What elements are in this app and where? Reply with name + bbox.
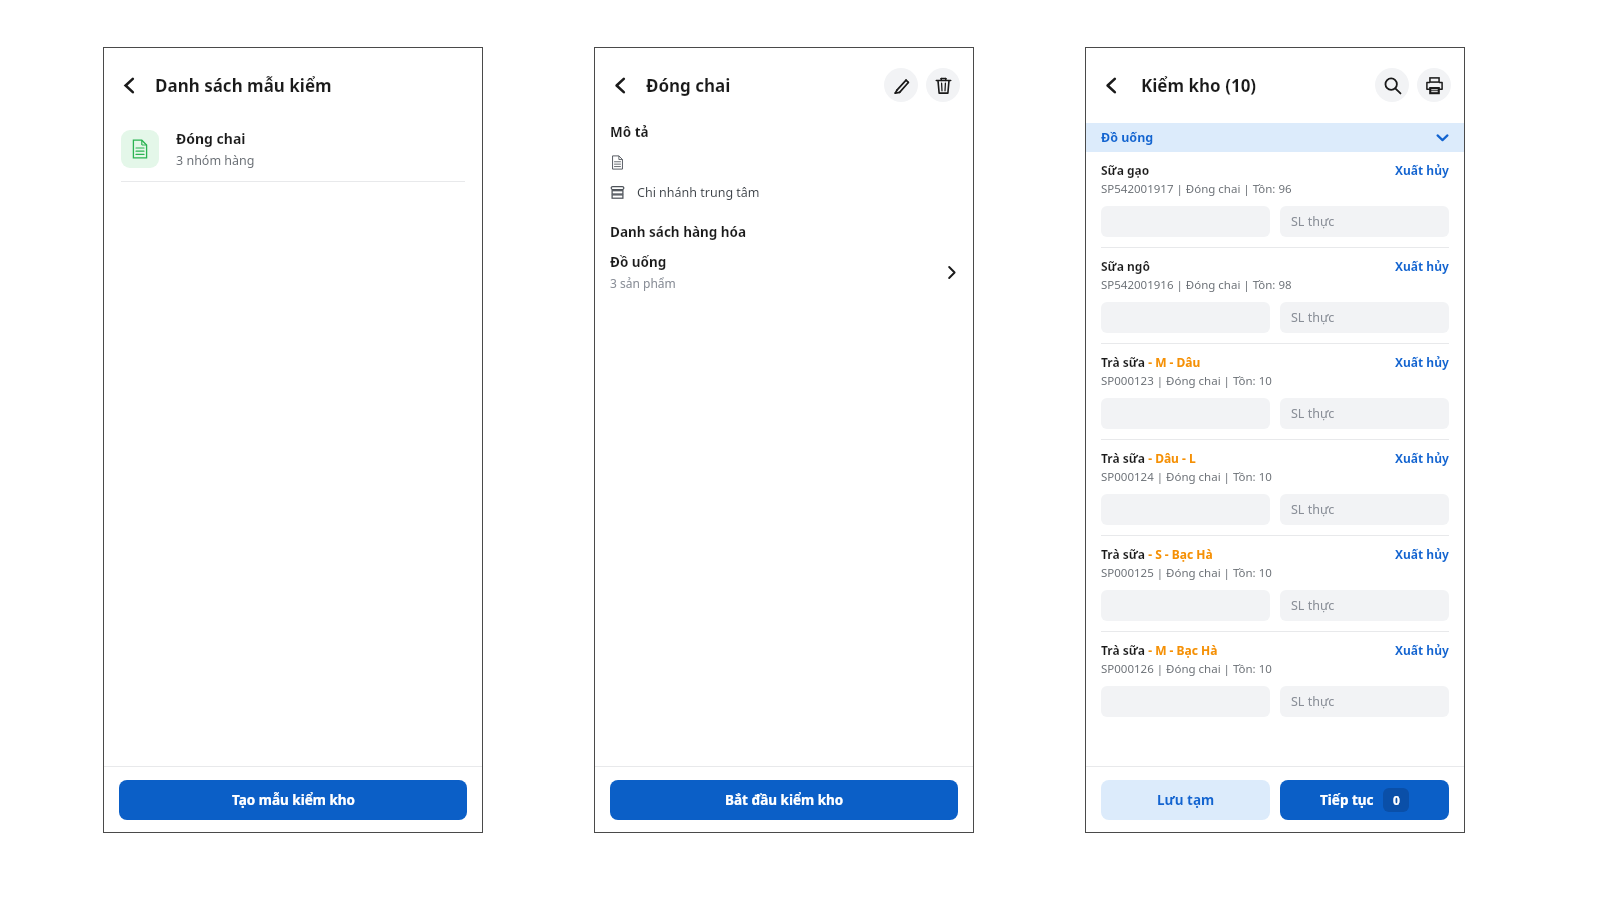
staticText: Đồ uống bbox=[1101, 129, 1154, 146]
button[interactable]: In bbox=[1417, 68, 1451, 102]
staticText: 3 sản phẩm bbox=[610, 275, 676, 291]
button[interactable]: Quay lại bbox=[1099, 73, 1123, 97]
staticText: Đóng chai bbox=[176, 129, 246, 148]
staticText: SP542001917 | Đóng chai | Tồn: 96 bbox=[1101, 181, 1292, 197]
staticText: 0 bbox=[1393, 792, 1400, 808]
button[interactable]: SL thực bbox=[1280, 302, 1449, 333]
staticText: SL thực bbox=[1291, 693, 1335, 710]
staticText: Bắt đầu kiểm kho bbox=[725, 791, 844, 809]
button[interactable]: Đóng chai bbox=[103, 123, 483, 181]
button[interactable]: Đồ uống bbox=[594, 241, 974, 301]
button[interactable]: Tìm kiếm bbox=[1375, 68, 1409, 102]
button[interactable]: Trà sữa - Dâu - L bbox=[1085, 440, 1465, 535]
button[interactable]: Lưu tạm bbox=[1101, 780, 1270, 820]
staticText: SL thực bbox=[1291, 597, 1335, 614]
button[interactable]: Bắt đầu kiểm kho bbox=[610, 780, 958, 820]
button[interactable]: SL thực bbox=[1280, 686, 1449, 717]
staticText: Lưu tạm bbox=[1157, 791, 1215, 809]
staticText: Danh sách mẫu kiểm bbox=[155, 74, 332, 97]
staticText: SL thực bbox=[1291, 405, 1335, 422]
staticText: SP000124 | Đóng chai | Tồn: 10 bbox=[1101, 469, 1272, 485]
staticText: 3 nhóm hàng bbox=[176, 152, 255, 169]
button[interactable]: SL thực bbox=[1280, 206, 1449, 237]
staticText: Tiếp tục bbox=[1320, 791, 1374, 809]
button[interactable]: Xuất hủy bbox=[1395, 642, 1449, 658]
button[interactable]: Tạo mẫu kiểm kho bbox=[119, 780, 467, 820]
staticText: Trà sữa - M - Dâu bbox=[1101, 354, 1201, 370]
button[interactable]: Trà sữa - S - Bạc Hà bbox=[1085, 536, 1465, 631]
button[interactable]: Trà sữa - M - Dâu bbox=[1085, 344, 1465, 439]
button[interactable]: SL thực bbox=[1280, 398, 1449, 429]
button[interactable]: Tiếp tục bbox=[1280, 780, 1449, 820]
staticText: Sữa gạo bbox=[1101, 162, 1150, 178]
staticText: SP000125 | Đóng chai | Tồn: 10 bbox=[1101, 565, 1272, 581]
button[interactable]: Xuất hủy bbox=[1395, 258, 1449, 274]
staticText: Tạo mẫu kiểm kho bbox=[232, 791, 355, 809]
button[interactable]: Sữa gạo bbox=[1085, 152, 1465, 247]
button[interactable]: Quay lại bbox=[608, 73, 632, 97]
button[interactable]: Xóa bbox=[926, 68, 960, 102]
staticText: Chi nhánh trung tâm bbox=[637, 184, 760, 201]
button[interactable]: Đồ uống bbox=[1085, 123, 1465, 152]
button[interactable]: Quay lại bbox=[117, 73, 141, 97]
staticText: Trà sữa - Dâu - L bbox=[1101, 450, 1196, 466]
staticText: Mô tả bbox=[610, 123, 649, 141]
staticText: SP000126 | Đóng chai | Tồn: 10 bbox=[1101, 661, 1272, 677]
button[interactable]: Xuất hủy bbox=[1395, 162, 1449, 178]
button[interactable]: SL thực bbox=[1280, 494, 1449, 525]
staticText: Trà sữa - M - Bạc Hà bbox=[1101, 642, 1218, 658]
staticText: Đồ uống bbox=[610, 253, 667, 271]
staticText: SP542001916 | Đóng chai | Tồn: 98 bbox=[1101, 277, 1292, 293]
button[interactable]: SL thực bbox=[1280, 590, 1449, 621]
button[interactable]: Xuất hủy bbox=[1395, 450, 1449, 466]
staticText: SL thực bbox=[1291, 213, 1335, 230]
staticText: Trà sữa - S - Bạc Hà bbox=[1101, 546, 1213, 562]
staticText: Đóng chai bbox=[646, 74, 731, 97]
staticText: Sữa ngô bbox=[1101, 258, 1150, 274]
button[interactable]: Xuất hủy bbox=[1395, 354, 1449, 370]
staticText: Kiểm kho (10) bbox=[1141, 74, 1257, 97]
button[interactable]: Sữa ngô bbox=[1085, 248, 1465, 343]
staticText: SP000123 | Đóng chai | Tồn: 10 bbox=[1101, 373, 1272, 389]
button[interactable]: Xuất hủy bbox=[1395, 546, 1449, 562]
staticText: Danh sách hàng hóa bbox=[610, 223, 747, 241]
staticText: SL thực bbox=[1291, 501, 1335, 518]
staticText: SL thực bbox=[1291, 309, 1335, 326]
button[interactable]: Trà sữa - M - Bạc Hà bbox=[1085, 632, 1465, 727]
button[interactable]: Chỉnh sửa bbox=[884, 68, 918, 102]
